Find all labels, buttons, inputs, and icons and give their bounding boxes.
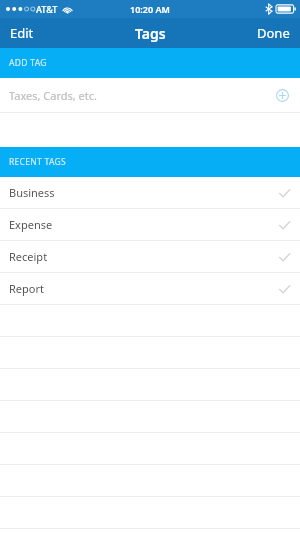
staticText: Expense xyxy=(9,217,53,232)
button[interactable]: Add tag xyxy=(272,85,292,105)
staticText: Done xyxy=(257,24,290,42)
button[interactable]: Report xyxy=(0,273,300,304)
staticText: ADD TAG xyxy=(9,57,47,69)
button[interactable]: Taxes, Cards, etc. xyxy=(0,78,300,112)
staticText: Tags xyxy=(135,24,166,43)
button[interactable]: Receipt xyxy=(0,241,300,272)
button[interactable]: Expense xyxy=(0,209,300,240)
staticText: Edit xyxy=(10,24,34,42)
button[interactable]: Done xyxy=(247,18,300,48)
staticText: Taxes, Cards, etc. xyxy=(9,88,97,103)
button[interactable]: Edit xyxy=(0,18,44,48)
staticText: Receipt xyxy=(9,249,48,264)
staticText: 10:20 AM xyxy=(130,3,170,15)
button[interactable]: Business xyxy=(0,177,300,208)
staticText: Business xyxy=(9,185,55,200)
staticText: RECENT TAGS xyxy=(9,156,67,168)
staticText: Report xyxy=(9,281,44,296)
staticText: AT&T xyxy=(36,3,58,15)
